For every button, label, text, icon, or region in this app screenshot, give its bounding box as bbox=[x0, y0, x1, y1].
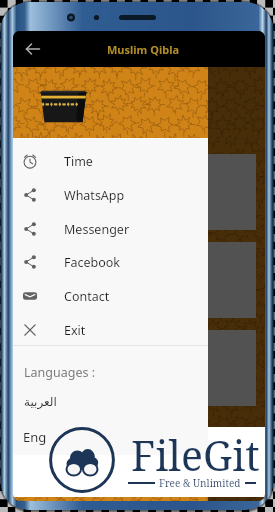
staticText: WhatsApp bbox=[64, 187, 125, 204]
button[interactable]: العربية bbox=[13, 388, 208, 416]
button[interactable]: Messenger bbox=[13, 212, 208, 246]
staticText: العربية bbox=[24, 395, 57, 409]
button[interactable]: Facebook bbox=[13, 245, 208, 279]
button[interactable]: Exit bbox=[13, 313, 208, 347]
button[interactable]: WhatsApp bbox=[13, 178, 208, 212]
button[interactable]: Contact bbox=[13, 279, 208, 313]
staticText: Time bbox=[64, 153, 93, 170]
button[interactable] bbox=[22, 242, 256, 318]
staticText: Contact bbox=[64, 288, 110, 305]
button[interactable] bbox=[22, 330, 256, 406]
staticText: Languages : bbox=[24, 364, 96, 381]
staticText: Messenger bbox=[64, 221, 130, 238]
button[interactable]: Time bbox=[13, 144, 208, 178]
button[interactable]: Eng bbox=[13, 423, 208, 451]
staticText: Free & Unlimited bbox=[159, 476, 241, 489]
button[interactable]: Back bbox=[19, 35, 47, 63]
staticText: Facebook bbox=[64, 254, 121, 271]
button[interactable] bbox=[22, 154, 256, 230]
staticText: FileGit bbox=[131, 427, 260, 483]
staticText: Muslim Qibla bbox=[107, 42, 180, 57]
staticText: Eng bbox=[23, 428, 47, 446]
staticText: Exit bbox=[64, 322, 86, 339]
button[interactable]: FileGit bbox=[49, 427, 115, 493]
